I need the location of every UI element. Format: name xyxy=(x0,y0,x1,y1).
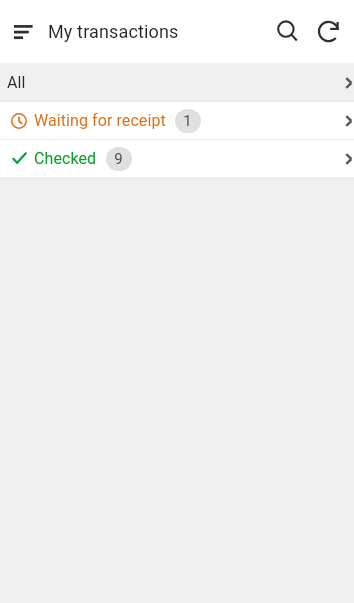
button[interactable]: Refresh xyxy=(308,11,352,55)
button[interactable]: Waiting for receipt xyxy=(0,102,354,139)
button[interactable]: All xyxy=(0,64,354,101)
staticText: 9 xyxy=(114,150,123,168)
staticText: All xyxy=(7,73,26,92)
staticText: Waiting for receipt xyxy=(34,111,166,130)
button[interactable]: Checked xyxy=(0,140,354,177)
staticText: Checked xyxy=(34,149,97,168)
button[interactable]: Sort xyxy=(0,9,46,55)
button[interactable]: Search xyxy=(266,10,310,54)
staticText: 1 xyxy=(183,112,192,130)
staticText: My transactions xyxy=(48,21,179,42)
